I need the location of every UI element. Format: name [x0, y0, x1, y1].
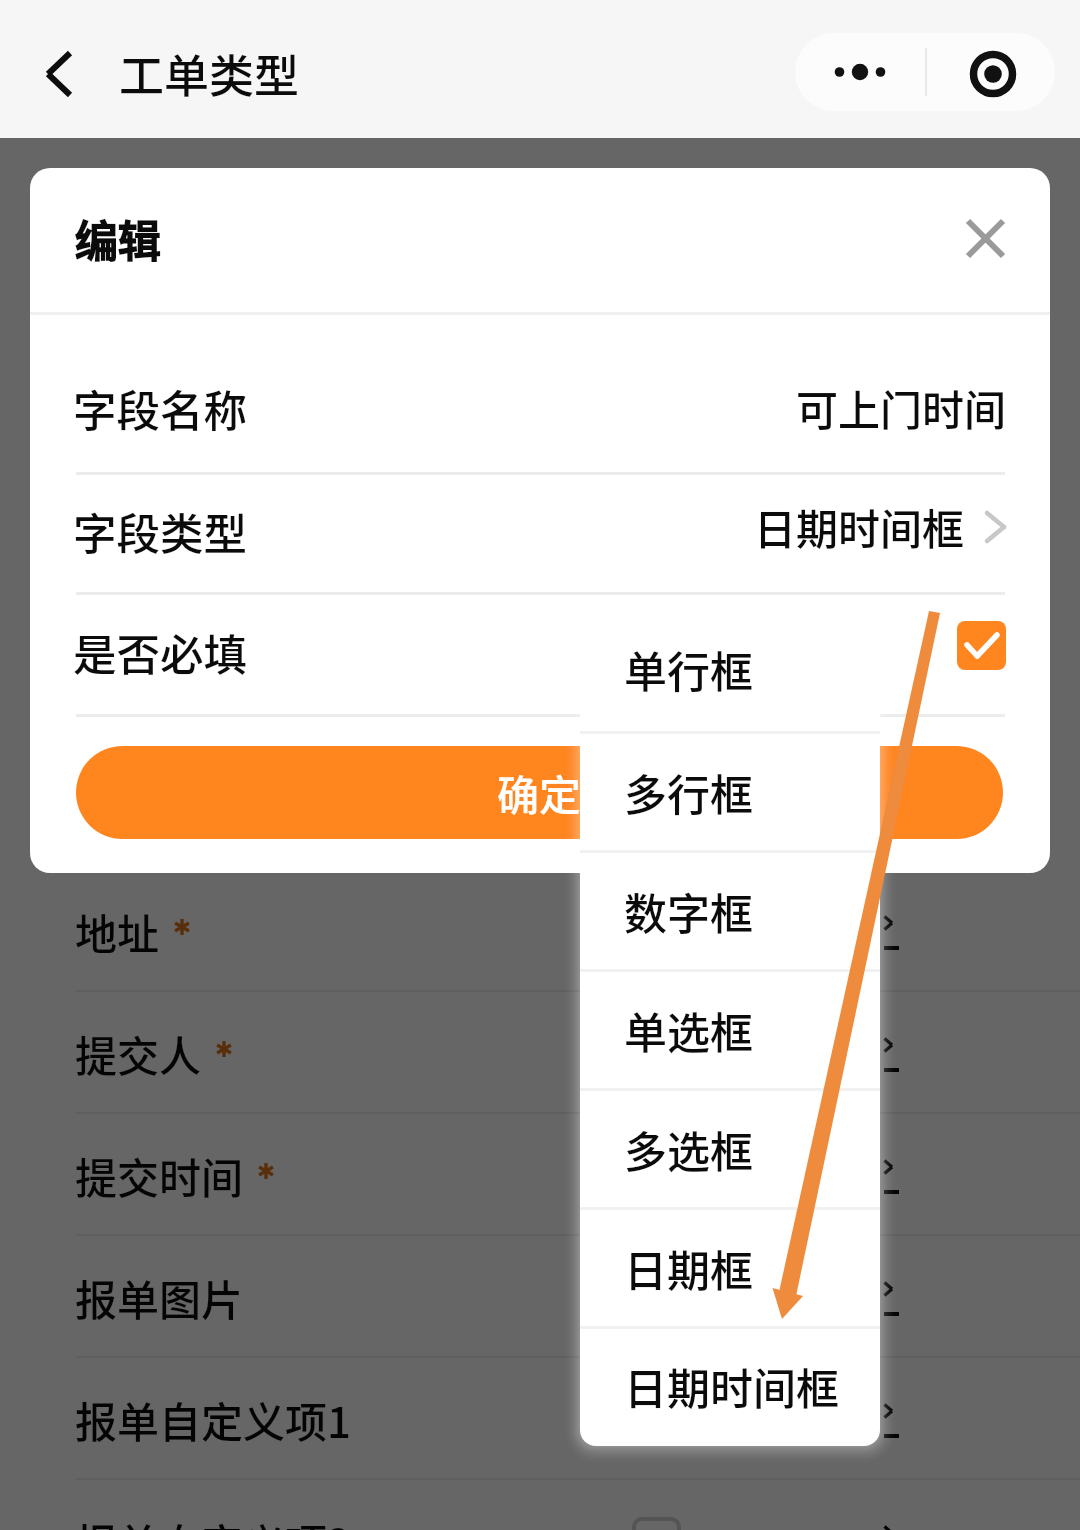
- staticText: 日期框: [624, 1237, 753, 1299]
- button[interactable]: 提交人: [0, 992, 1080, 1114]
- staticText: 单行框: [624, 638, 753, 700]
- button[interactable]: 数字框: [580, 853, 880, 972]
- button[interactable]: 提交时间: [0, 1114, 1080, 1236]
- button[interactable]: [30, 471, 1050, 592]
- button[interactable]: 地址: [0, 870, 1080, 992]
- button[interactable]: 报单自定义项2: [0, 1480, 1080, 1530]
- button[interactable]: [30, 348, 1050, 471]
- staticText: 单选框: [624, 999, 753, 1061]
- button[interactable]: 多行框: [580, 734, 880, 853]
- staticText: 日期时间框: [754, 496, 965, 557]
- staticText: 多行框: [624, 761, 753, 823]
- staticText: 工单类型: [119, 41, 300, 106]
- button[interactable]: [30, 592, 1050, 714]
- staticText: 多选框: [624, 1118, 753, 1180]
- button[interactable]: More options: [795, 33, 925, 111]
- button[interactable]: 单选框: [580, 972, 880, 1091]
- staticText: 确定: [497, 762, 582, 823]
- staticText: 字段名称: [73, 377, 247, 440]
- staticText: 字段类型: [73, 500, 247, 563]
- button[interactable]: Required: [957, 621, 1006, 670]
- button[interactable]: 报单自定义项1: [0, 1358, 1080, 1480]
- staticText: 可上门时间: [796, 377, 1007, 438]
- button[interactable]: 多选框: [580, 1091, 880, 1210]
- staticText: 提交人: [75, 1023, 202, 1084]
- staticText: 报单自定义项2: [75, 1511, 351, 1530]
- staticText: 编辑: [74, 208, 160, 270]
- button[interactable]: Back: [13, 34, 103, 114]
- button[interactable]: Close dialog: [940, 193, 1031, 284]
- button[interactable]: 单行框: [580, 608, 880, 734]
- staticText: 报单图片: [75, 1267, 244, 1328]
- button[interactable]: 日期框: [580, 1210, 880, 1329]
- button[interactable]: 日期时间框: [580, 1329, 880, 1446]
- button[interactable]: 报单图片: [0, 1236, 1080, 1358]
- button[interactable]: Close mini program: [927, 33, 1055, 111]
- staticText: 地址: [75, 901, 160, 962]
- staticText: 是否必填: [73, 621, 247, 684]
- button[interactable]: 确定: [76, 746, 1003, 839]
- staticText: 日期时间框: [624, 1355, 839, 1417]
- staticText: 报单自定义项1: [75, 1389, 351, 1450]
- staticText: 数字框: [624, 880, 753, 942]
- staticText: 提交时间: [75, 1145, 244, 1206]
